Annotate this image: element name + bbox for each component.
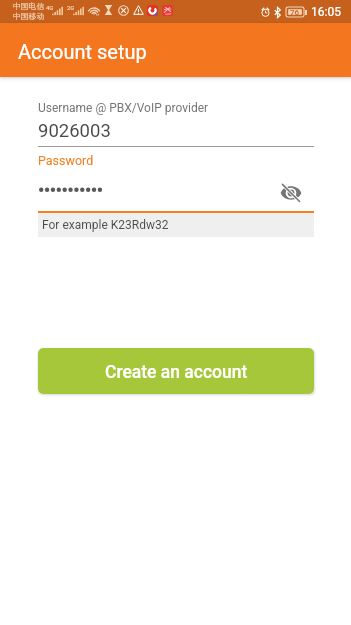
staticText: For example K23Rdw32 bbox=[42, 218, 169, 232]
staticText: 中国移动 bbox=[13, 11, 45, 21]
staticText: 2G bbox=[67, 4, 75, 11]
staticText: Account setup bbox=[18, 40, 147, 63]
staticText: 4G bbox=[46, 4, 54, 11]
staticText: 中国电信 bbox=[13, 1, 45, 11]
staticText: Create an account bbox=[105, 362, 248, 383]
button[interactable]: Show password bbox=[280, 179, 314, 205]
staticText: Password bbox=[38, 153, 94, 168]
staticText: 76 bbox=[290, 8, 300, 17]
staticText: Username @ PBX/VoIP provider bbox=[38, 101, 209, 115]
button[interactable]: Create an account bbox=[38, 348, 314, 394]
staticText: 16:05 bbox=[311, 5, 341, 19]
staticText: 9026003 bbox=[38, 120, 111, 142]
